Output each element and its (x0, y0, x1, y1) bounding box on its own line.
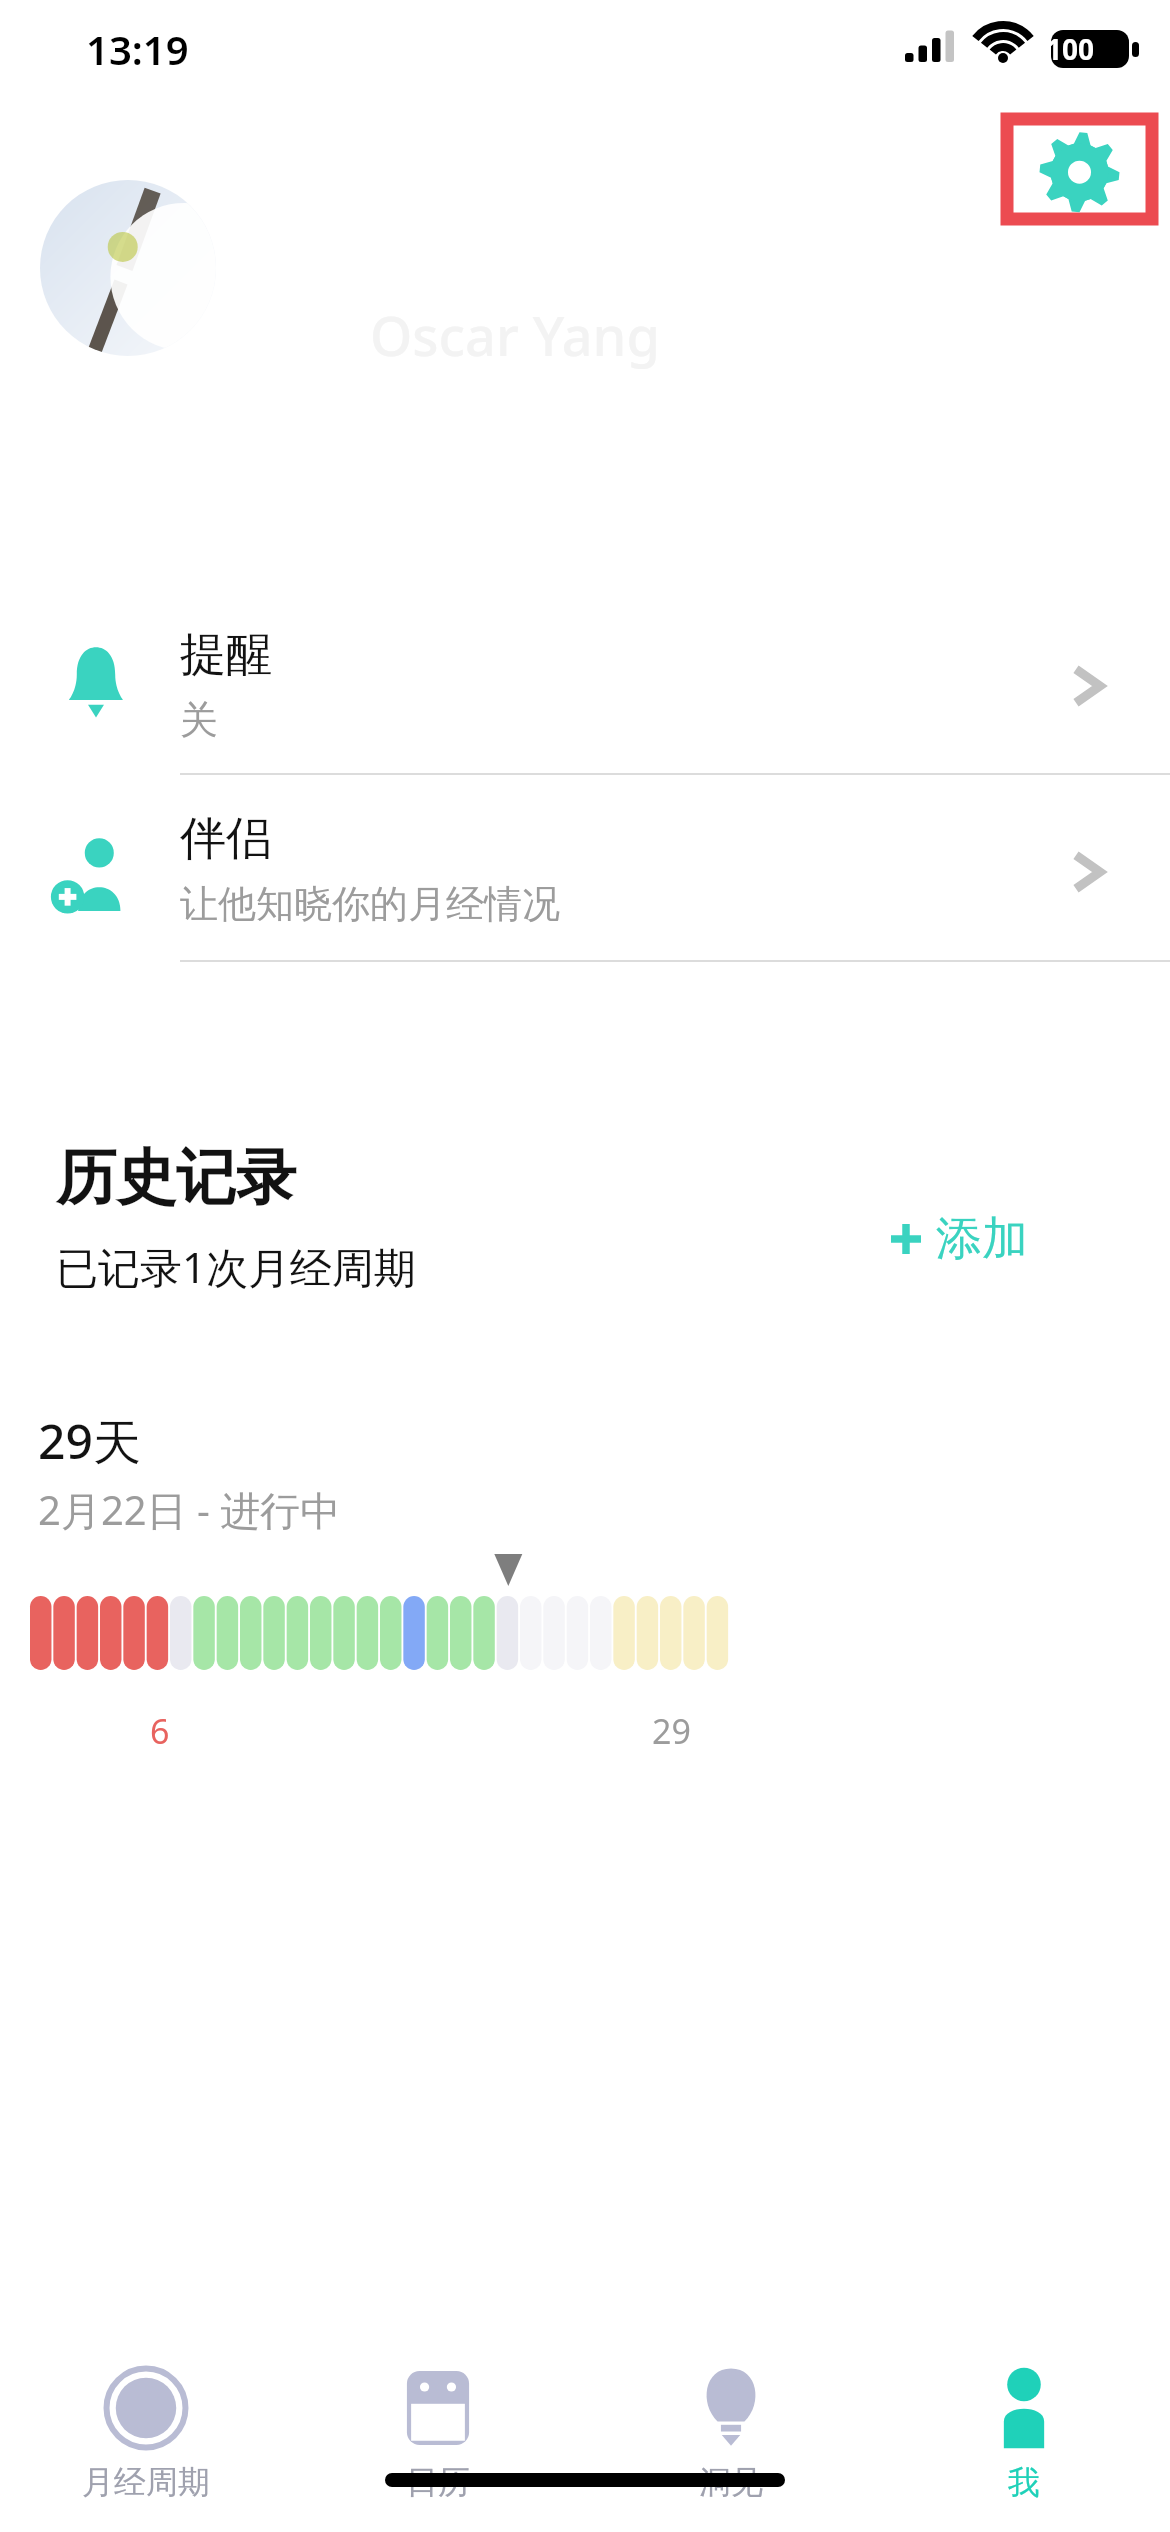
staticText: 历史记录 (56, 1140, 296, 1216)
staticText: 日历 (406, 2462, 470, 2502)
staticText: Oscar Yang (370, 298, 660, 372)
button[interactable]: 洞见 (584, 2360, 877, 2510)
button[interactable]: 提醒 (0, 608, 1170, 773)
button[interactable]: 添加 (888, 1196, 1028, 1282)
staticText: 13:19 (86, 22, 189, 76)
staticText: 2月22日 - 进行中 (38, 1482, 341, 1537)
staticText: 6 (150, 1708, 170, 1754)
button[interactable]: 月经周期 (0, 2360, 292, 2510)
button[interactable]: 29天 (0, 1390, 1170, 1750)
staticText: 我 (1008, 2462, 1040, 2502)
staticText: 伴侣 (180, 810, 272, 868)
staticText: 添加 (936, 1210, 1028, 1268)
staticText: 洞见 (699, 2462, 763, 2502)
button[interactable]: Settings (1001, 113, 1158, 187)
staticText: 29 (652, 1708, 691, 1754)
staticText: 月经周期 (82, 2462, 210, 2502)
staticText: 已记录1次月经周期 (56, 1238, 417, 1295)
staticText: 29天 (38, 1408, 141, 1474)
staticText: 100 (1046, 30, 1095, 68)
staticText: 让他知晓你的月经情况 (180, 880, 560, 928)
button[interactable]: 日历 (292, 2360, 584, 2510)
staticText: 关 (180, 696, 218, 744)
button[interactable]: 我 (877, 2360, 1170, 2510)
button[interactable] (40, 180, 216, 356)
staticText: 提醒 (180, 626, 272, 684)
button[interactable]: 伴侣 (0, 790, 1170, 960)
